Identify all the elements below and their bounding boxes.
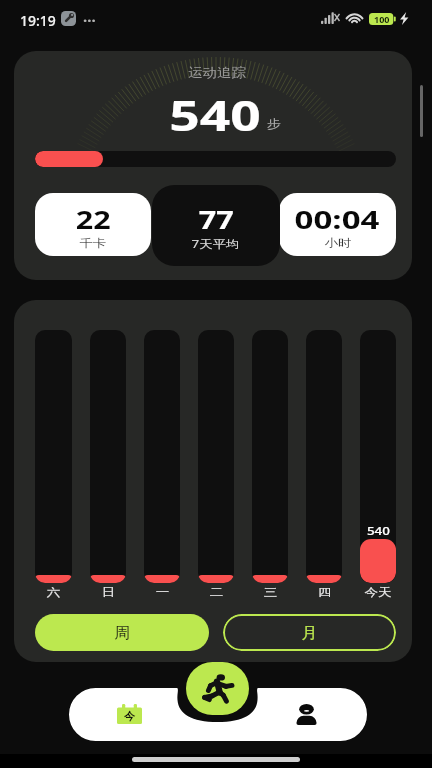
button[interactable]: 00:04 — [279, 193, 396, 256]
button[interactable] — [198, 330, 234, 583]
button[interactable]: Start workout — [186, 662, 249, 715]
button[interactable]: 月 — [223, 614, 396, 651]
staticText: 100 — [374, 13, 390, 25]
staticText: 7天平均 — [192, 236, 240, 251]
button[interactable]: 22 — [35, 193, 151, 256]
button[interactable]: 周 — [35, 614, 209, 651]
staticText: 三 — [264, 585, 277, 599]
button[interactable]: Today — [107, 697, 152, 731]
staticText: 19:19 — [20, 11, 56, 30]
button[interactable]: 77 — [152, 185, 280, 266]
staticText: 千卡 — [80, 236, 106, 250]
staticText: 22 — [76, 202, 111, 236]
button[interactable]: Profile — [284, 697, 329, 731]
staticText: 运动追踪 — [188, 64, 246, 80]
staticText: 一 — [156, 585, 169, 599]
staticText: 77 — [199, 202, 234, 236]
button[interactable] — [90, 330, 126, 583]
staticText: ··· — [83, 10, 96, 30]
staticText: 月 — [301, 624, 317, 643]
button[interactable] — [35, 330, 72, 583]
staticText: 四 — [318, 585, 331, 599]
staticText: 周 — [115, 624, 130, 643]
staticText: 00:04 — [295, 202, 380, 236]
staticText: 540 — [169, 87, 262, 143]
staticText: 日 — [102, 585, 115, 599]
staticText: 540 — [367, 523, 390, 538]
staticText: 今天 — [364, 585, 392, 599]
button[interactable]: 540 — [360, 330, 396, 583]
staticText: 小时 — [325, 236, 351, 250]
staticText: 二 — [210, 585, 223, 599]
button[interactable] — [144, 330, 180, 583]
staticText: 六 — [47, 585, 60, 599]
staticText: 今 — [124, 709, 135, 723]
button[interactable] — [306, 330, 342, 583]
staticText: 步 — [267, 116, 281, 131]
button[interactable] — [252, 330, 288, 583]
